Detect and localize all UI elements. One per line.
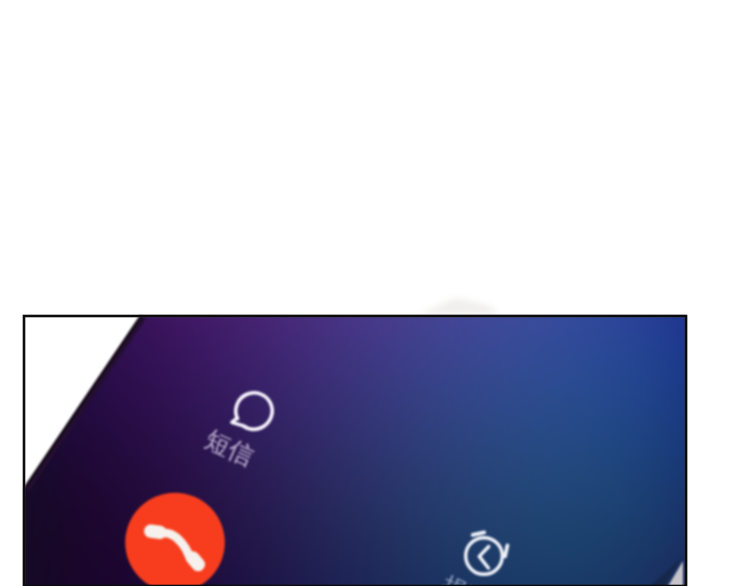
button[interactable]: End call xyxy=(125,493,225,586)
button[interactable]: 短信 xyxy=(216,382,292,458)
button[interactable]: 提醒 xyxy=(446,524,522,586)
